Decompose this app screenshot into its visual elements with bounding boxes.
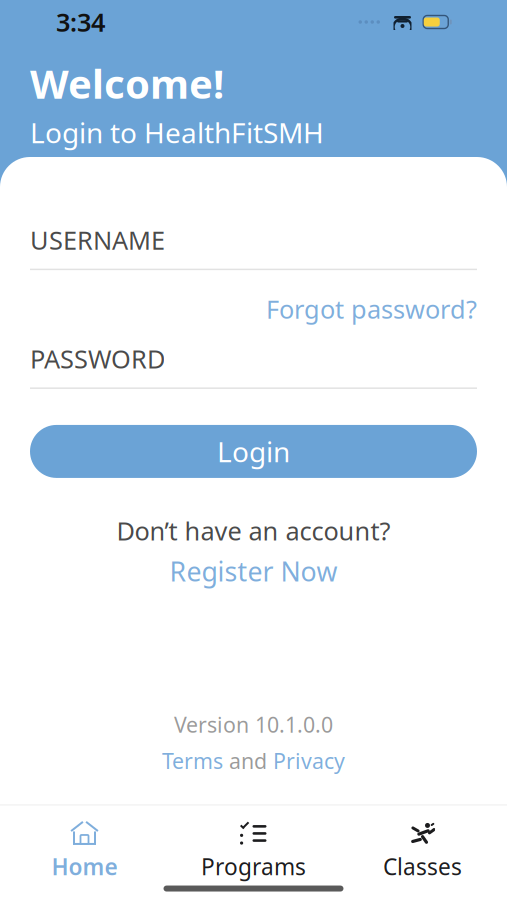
staticText: Welcome! bbox=[30, 57, 224, 110]
staticText: Programs bbox=[201, 851, 306, 881]
staticText: Classes bbox=[383, 851, 462, 881]
staticText: Forgot password? bbox=[266, 292, 477, 326]
button[interactable]: Classes bbox=[338, 816, 507, 885]
staticText: PASSWORD bbox=[30, 342, 165, 375]
staticText: Home bbox=[51, 851, 117, 881]
button[interactable]: Privacy bbox=[273, 747, 345, 775]
staticText: USERNAME bbox=[30, 223, 165, 257]
staticText: Login bbox=[217, 433, 290, 470]
staticText: Terms bbox=[162, 747, 223, 775]
staticText: Don’t have an account? bbox=[116, 514, 390, 547]
staticText: Privacy bbox=[273, 747, 345, 775]
staticText: 3:34 bbox=[56, 5, 105, 39]
button[interactable]: Home bbox=[0, 816, 169, 885]
button[interactable]: Programs bbox=[169, 816, 338, 885]
button[interactable]: Terms bbox=[162, 747, 223, 775]
staticText: Login to HealthFitSMH bbox=[30, 114, 324, 151]
staticText: and bbox=[223, 747, 273, 775]
button[interactable]: Login bbox=[30, 425, 477, 478]
staticText: Register Now bbox=[169, 554, 337, 589]
button[interactable]: Forgot password? bbox=[30, 270, 477, 336]
button[interactable]: Register Now bbox=[161, 548, 345, 589]
staticText: Version 10.1.0.0 bbox=[174, 710, 333, 739]
